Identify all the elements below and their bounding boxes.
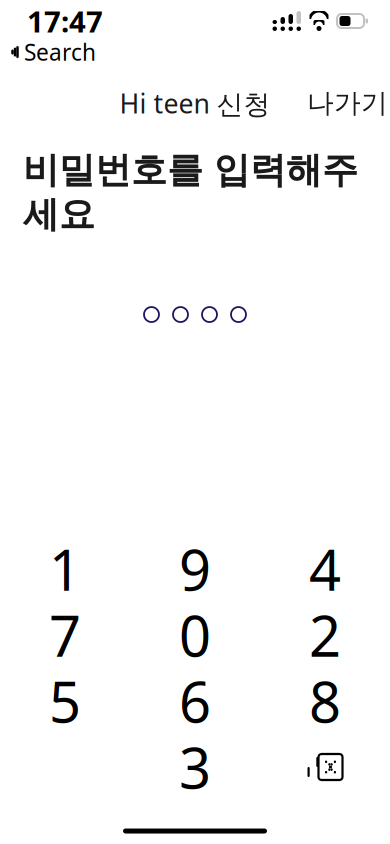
button[interactable]: 0 <box>130 602 260 668</box>
staticText: Hi teen 신청 <box>119 85 270 121</box>
button[interactable]: 5 <box>0 668 130 734</box>
staticText: 비밀번호를 입력해주세요 <box>23 148 358 236</box>
staticText: 0 <box>179 598 211 672</box>
staticText: 9 <box>179 532 211 606</box>
button[interactable]: 9 <box>130 536 260 602</box>
button[interactable]: 나가기 <box>305 79 390 127</box>
staticText: 8 <box>309 664 341 738</box>
button[interactable]: 8 <box>260 668 390 734</box>
staticText: 17:47 <box>27 1 103 40</box>
button[interactable]: 1 <box>0 536 130 602</box>
staticText: 2 <box>309 598 341 672</box>
staticText: 7 <box>49 598 81 672</box>
staticText: 1 <box>49 532 81 606</box>
button[interactable]: Search <box>0 34 106 70</box>
button[interactable]: 7 <box>0 602 130 668</box>
button[interactable]: 6 <box>130 668 260 734</box>
staticText: 나가기 <box>307 87 388 119</box>
staticText: 4 <box>309 532 341 606</box>
button[interactable]: 2 <box>260 602 390 668</box>
staticText: 6 <box>179 664 211 738</box>
button[interactable]: Delete <box>260 734 390 800</box>
button[interactable]: 4 <box>260 536 390 602</box>
button[interactable]: 3 <box>130 734 260 800</box>
staticText: Search <box>24 37 96 67</box>
staticText: 3 <box>179 730 211 804</box>
staticText: 5 <box>49 664 81 738</box>
